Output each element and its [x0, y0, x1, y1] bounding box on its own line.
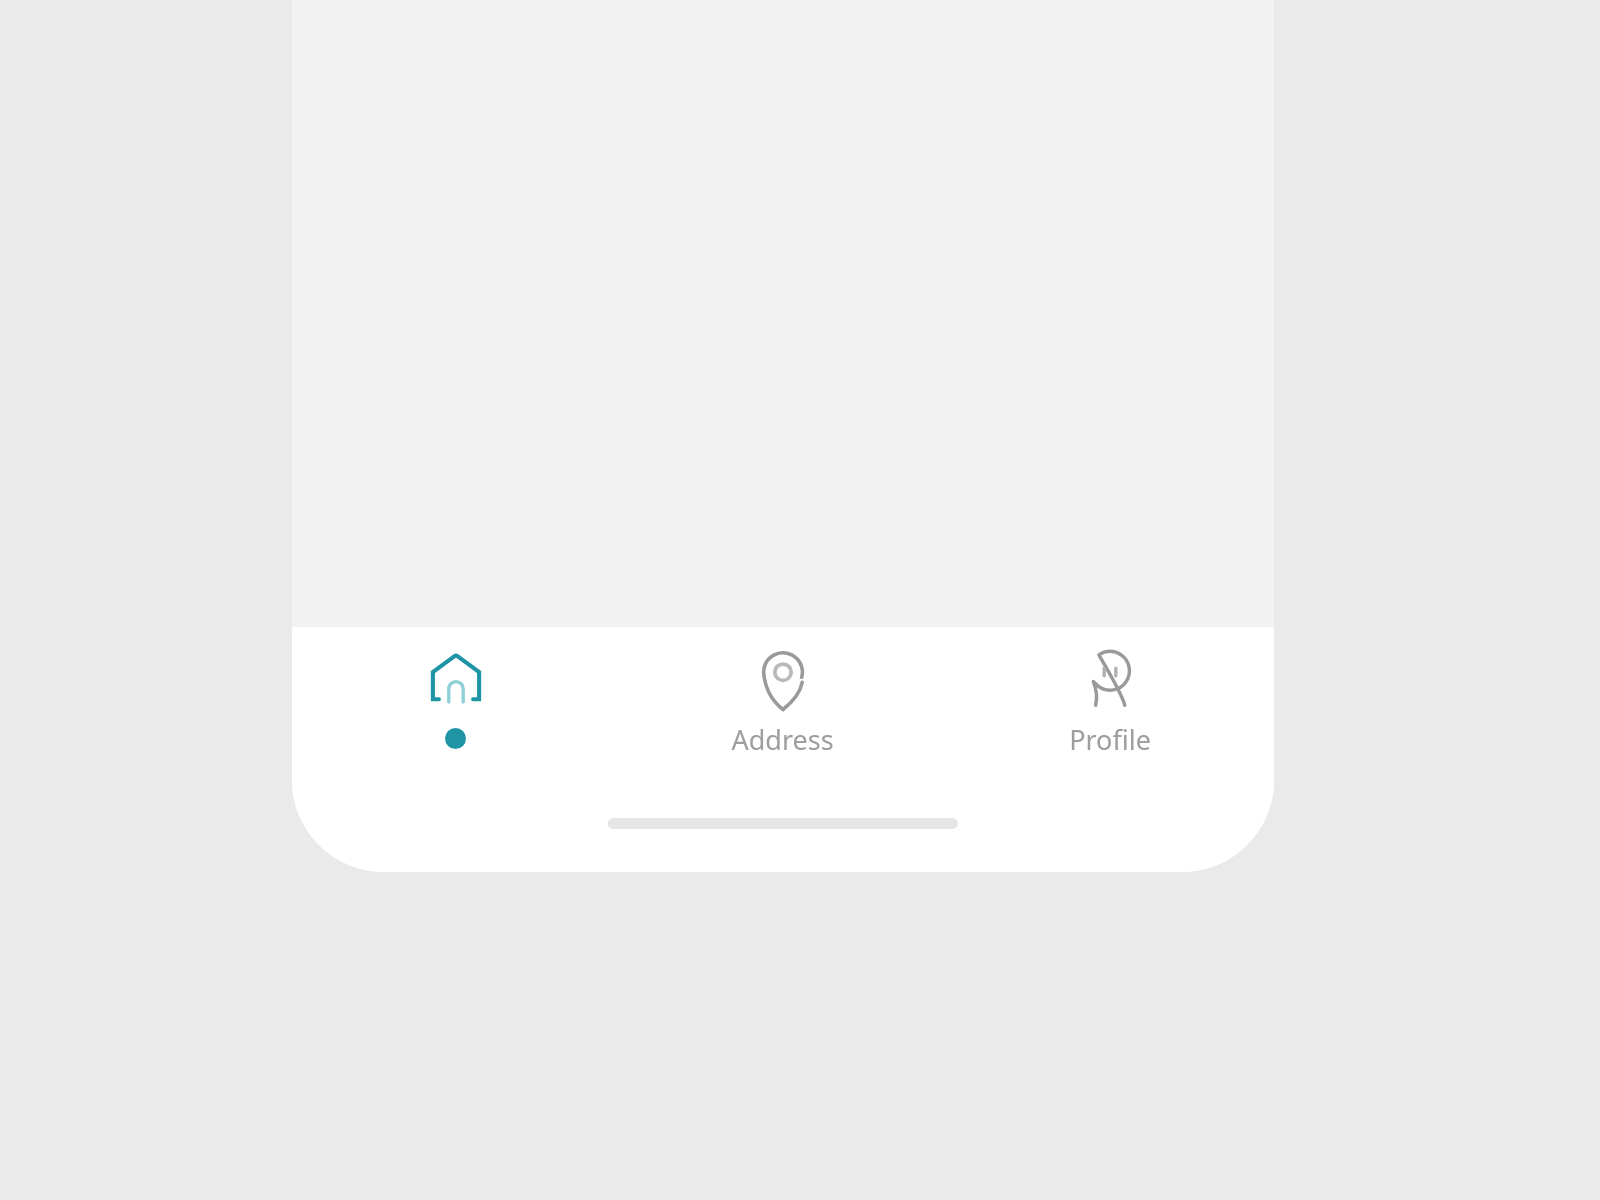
button[interactable]: Address [619, 627, 946, 777]
button[interactable]: Profile [946, 627, 1274, 777]
button[interactable]: Home [292, 627, 619, 777]
staticText: Profile [1069, 721, 1151, 758]
staticText: Address [731, 721, 834, 758]
